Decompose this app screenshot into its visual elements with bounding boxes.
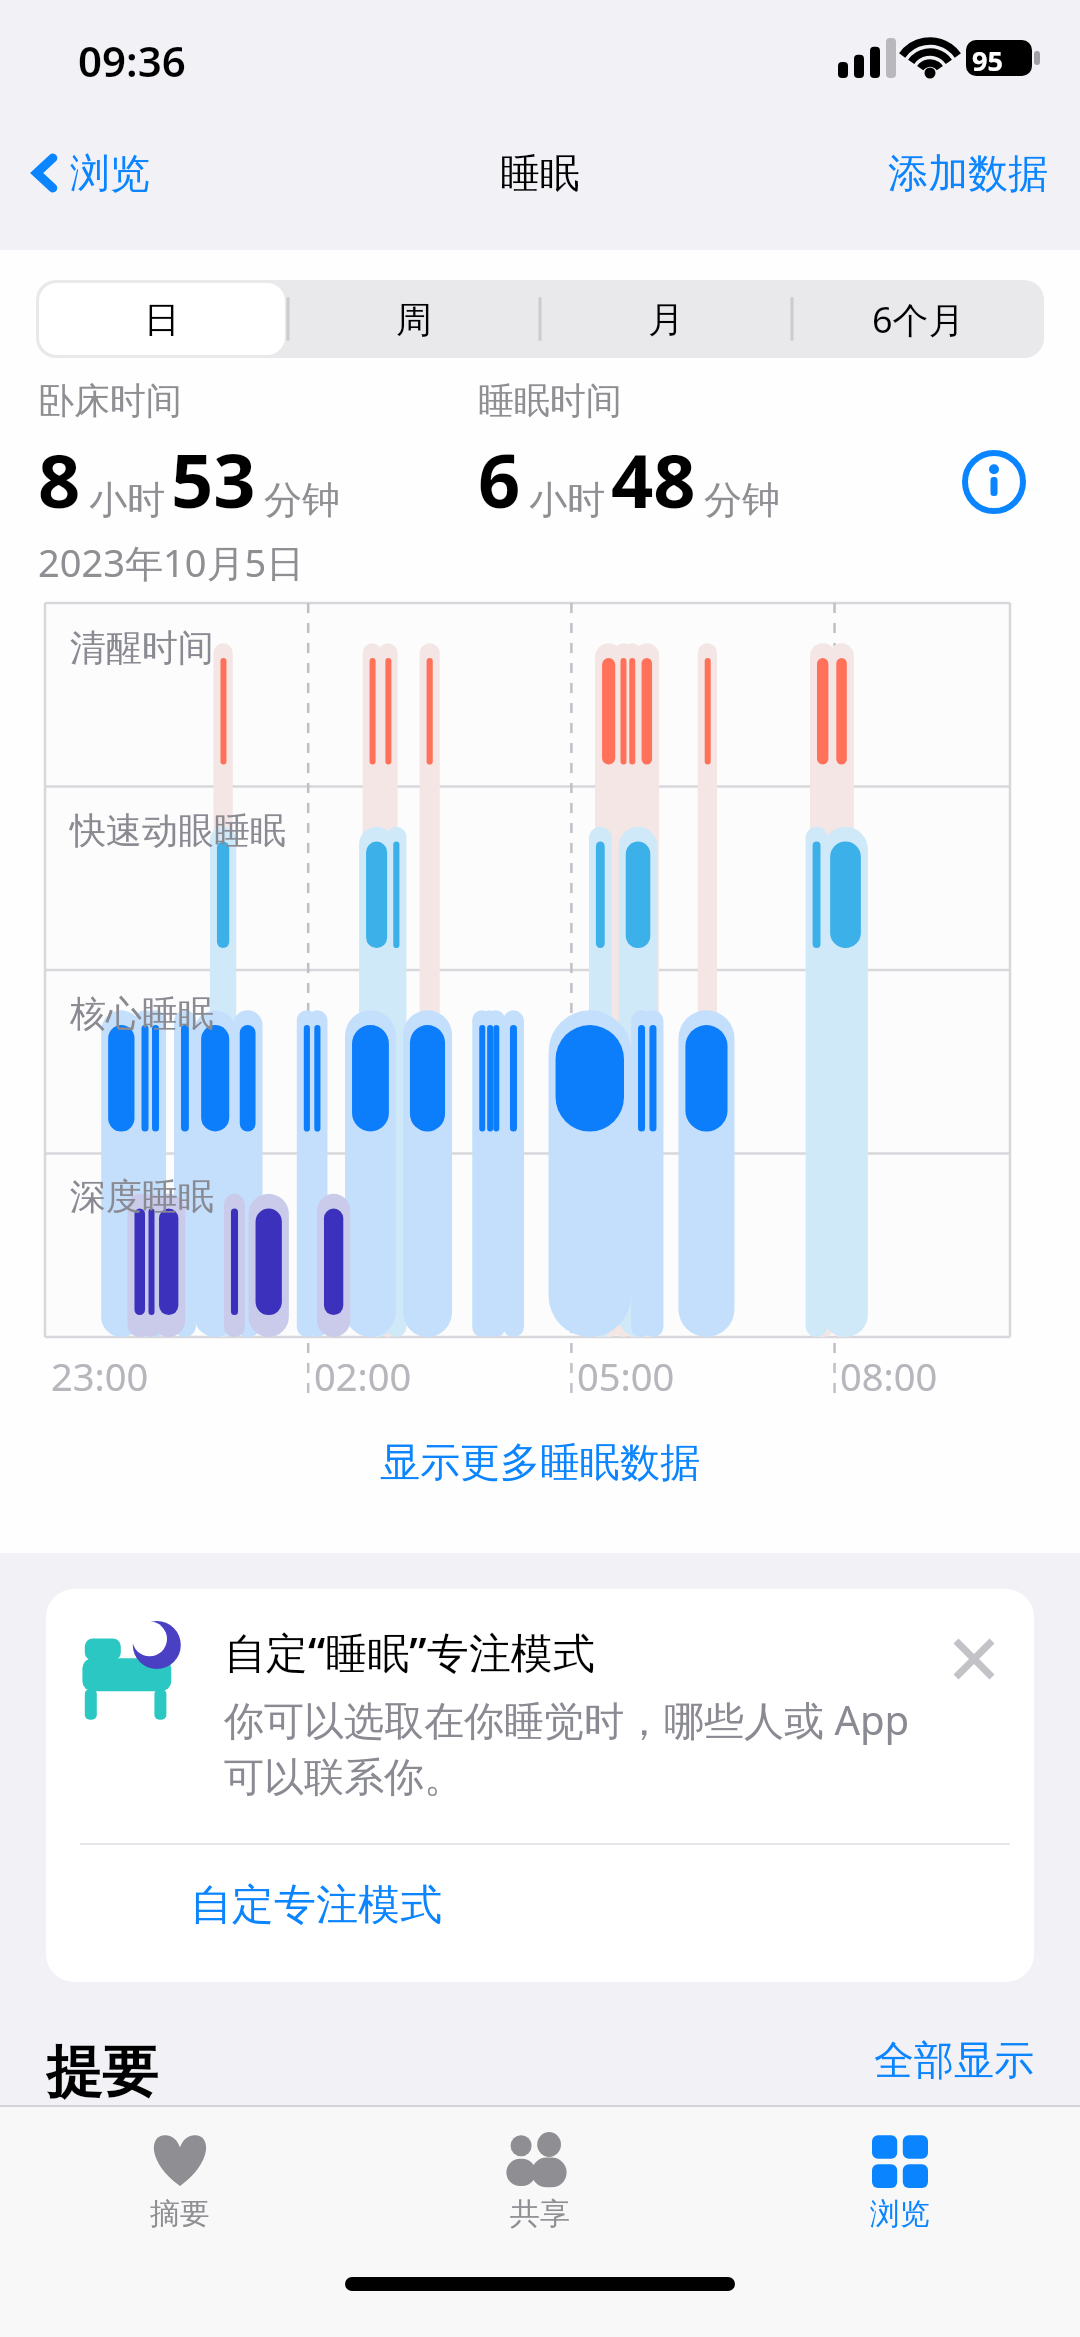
button[interactable]: 月 — [540, 280, 792, 358]
staticText: 23:00 — [51, 1350, 149, 1402]
staticText: 睡眠时间 — [478, 378, 622, 423]
staticText: 卧床时间 — [38, 378, 182, 423]
staticText: 95 — [972, 42, 1003, 79]
staticText: 日 — [144, 297, 180, 342]
staticText: 浏览 — [870, 2195, 930, 2233]
staticText: 快速动眼睡眠 — [70, 808, 286, 853]
staticText: 浏览 — [70, 148, 150, 198]
staticText: 全部显示 — [874, 2035, 1034, 2085]
button[interactable]: 浏览 — [720, 2121, 1080, 2241]
button[interactable]: 共享 — [360, 2121, 720, 2241]
staticText: 08:00 — [840, 1350, 938, 1402]
button[interactable]: 关闭 — [938, 1623, 1010, 1695]
staticText: 分钟 — [264, 476, 340, 524]
button[interactable]: 添加数据 — [882, 142, 1054, 204]
button[interactable]: 浏览 — [24, 134, 158, 212]
staticText: 共享 — [510, 2195, 570, 2233]
staticText: 分钟 — [704, 476, 780, 524]
staticText: 清醒时间 — [70, 625, 214, 670]
button[interactable]: 日 — [36, 280, 288, 358]
staticText: 小时 — [89, 476, 165, 524]
button[interactable]: 信息 — [962, 450, 1026, 514]
staticText: 提要 — [46, 2037, 158, 2107]
staticText: 自定“睡眠”专注模式 — [224, 1623, 595, 1680]
staticText: 自定专注模式 — [190, 1879, 442, 1932]
staticText: 周 — [396, 297, 432, 342]
staticText: 添加数据 — [888, 148, 1048, 198]
staticText: 05:00 — [577, 1350, 675, 1402]
staticText: 6个月 — [872, 295, 965, 344]
staticText: 8 — [38, 429, 81, 530]
staticText: 48 — [611, 429, 696, 530]
staticText: 2023年10月5日 — [38, 536, 305, 588]
staticText: 月 — [648, 297, 684, 342]
button[interactable]: 全部显示 — [874, 2035, 1034, 2085]
staticText: 深度睡眠 — [70, 1174, 214, 1219]
staticText: 摘要 — [150, 2195, 210, 2233]
staticText: 你可以选取在你睡觉时，哪些人或 App 可以联系你。 — [224, 1692, 938, 1803]
button[interactable]: 显示更多睡眠数据 — [360, 1425, 720, 1499]
staticText: 6 — [478, 429, 521, 530]
staticText: 02:00 — [314, 1350, 412, 1402]
button[interactable]: 周 — [288, 280, 540, 358]
button[interactable]: 6个月 — [792, 280, 1044, 358]
staticText: 显示更多睡眠数据 — [380, 1437, 700, 1487]
staticText: 小时 — [529, 476, 605, 524]
staticText: 核心睡眠 — [70, 991, 214, 1036]
button[interactable]: 自定专注模式 — [80, 1845, 1010, 1966]
button[interactable]: 摘要 — [0, 2121, 360, 2241]
staticText: 53 — [171, 429, 256, 530]
staticText: 09:36 — [78, 32, 186, 89]
staticText: 睡眠 — [500, 148, 580, 198]
